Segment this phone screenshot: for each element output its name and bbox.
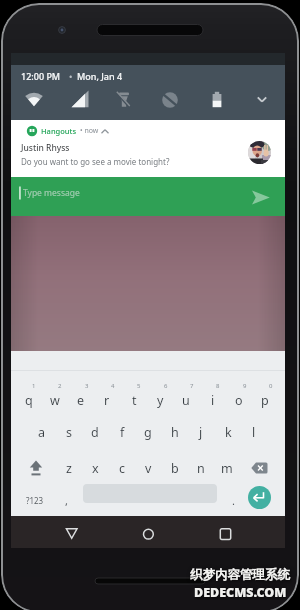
- staticText: Type message: [23, 187, 80, 199]
- staticText: b: [171, 460, 179, 477]
- staticText: g: [144, 424, 152, 441]
- button[interactable]: 6: [153, 377, 179, 395]
- button[interactable]: [136, 520, 160, 544]
- button[interactable]: o: [226, 391, 252, 409]
- button[interactable]: [249, 182, 283, 211]
- staticText: m: [221, 460, 233, 477]
- button[interactable]: i: [200, 391, 226, 409]
- button[interactable]: v: [135, 459, 161, 477]
- staticText: • now: [80, 126, 99, 136]
- staticText: d: [91, 424, 99, 441]
- button[interactable]: .: [220, 491, 246, 509]
- button[interactable]: ?123: [22, 491, 48, 509]
- button[interactable]: k: [215, 423, 241, 441]
- staticText: r: [104, 392, 110, 409]
- button[interactable]: c: [109, 459, 135, 477]
- staticText: Do you want to go see a movie tonight?: [21, 156, 170, 167]
- staticText: f: [120, 424, 125, 441]
- staticText: Hangouts: [41, 126, 77, 136]
- button[interactable]: 4: [100, 377, 126, 395]
- staticText: •: [69, 70, 73, 82]
- staticText: v: [145, 460, 152, 477]
- button[interactable]: z: [56, 459, 82, 477]
- button[interactable]: f: [109, 423, 135, 441]
- button[interactable]: n: [188, 459, 214, 477]
- staticText: 9: [243, 382, 247, 390]
- button[interactable]: 3: [74, 377, 100, 395]
- button[interactable]: Hangouts: [11, 120, 285, 177]
- button[interactable]: s: [56, 423, 82, 441]
- staticText: 6: [164, 382, 168, 390]
- button[interactable]: b: [162, 459, 188, 477]
- staticText: 2: [58, 382, 62, 390]
- staticText: ?123: [26, 495, 44, 506]
- staticText: n: [197, 460, 205, 477]
- button[interactable]: t: [121, 391, 147, 409]
- button[interactable]: e: [68, 391, 94, 409]
- staticText: 8: [216, 382, 220, 390]
- button[interactable]: [249, 93, 281, 117]
- staticText: 5: [137, 382, 141, 390]
- button[interactable]: 9: [232, 377, 258, 395]
- staticText: l: [252, 424, 256, 441]
- staticText: 12:00 PM: [21, 70, 61, 82]
- button[interactable]: Type message: [11, 177, 285, 216]
- button[interactable]: l: [241, 423, 267, 441]
- staticText: j: [199, 424, 203, 441]
- staticText: q: [25, 392, 33, 409]
- button[interactable]: y: [147, 391, 173, 409]
- staticText: Justin Rhyss: [21, 142, 70, 154]
- staticText: k: [225, 424, 232, 441]
- button[interactable]: q: [16, 391, 42, 409]
- button[interactable]: 5: [126, 377, 152, 395]
- button[interactable]: [248, 457, 272, 479]
- button[interactable]: 8: [205, 377, 231, 395]
- button[interactable]: p: [252, 391, 278, 409]
- staticText: u: [182, 392, 190, 409]
- staticText: Mon, Jan 4: [77, 70, 123, 82]
- staticText: c: [119, 460, 126, 477]
- button[interactable]: u: [173, 391, 199, 409]
- button[interactable]: g: [135, 423, 161, 441]
- button[interactable]: x: [82, 459, 108, 477]
- staticText: x: [92, 460, 99, 477]
- button[interactable]: w: [42, 391, 68, 409]
- button[interactable]: [214, 520, 238, 544]
- button[interactable]: h: [162, 423, 188, 441]
- button[interactable]: 7: [179, 377, 205, 395]
- staticText: w: [50, 392, 60, 409]
- button[interactable]: [60, 520, 84, 544]
- staticText: .: [232, 493, 235, 508]
- button[interactable]: [248, 486, 271, 509]
- button[interactable]: j: [188, 423, 214, 441]
- staticText: a: [38, 424, 46, 441]
- staticText: s: [66, 424, 72, 441]
- staticText: e: [77, 392, 85, 409]
- button[interactable]: 0: [258, 377, 284, 395]
- staticText: ,: [65, 493, 68, 508]
- button[interactable]: [24, 457, 48, 479]
- staticText: p: [261, 392, 269, 409]
- button[interactable]: r: [94, 391, 120, 409]
- staticText: h: [171, 424, 179, 441]
- staticText: 7: [190, 382, 194, 390]
- staticText: 0: [269, 382, 273, 390]
- button[interactable]: m: [214, 459, 240, 477]
- button[interactable]: ,: [53, 491, 79, 509]
- staticText: 1: [32, 382, 36, 390]
- staticText: z: [66, 460, 72, 477]
- staticText: i: [211, 392, 215, 409]
- staticText: t: [132, 392, 137, 409]
- staticText: 3: [85, 382, 89, 390]
- staticText: 4: [111, 382, 115, 390]
- staticText: o: [235, 392, 243, 409]
- button[interactable]: a: [29, 423, 55, 441]
- staticText: y: [157, 392, 164, 409]
- button[interactable]: 1: [21, 377, 47, 395]
- button[interactable]: 2: [47, 377, 73, 395]
- staticText: 织梦内容管理系统: [190, 567, 290, 583]
- button[interactable]: d: [82, 423, 108, 441]
- staticText: DEDECMS.COM: [194, 584, 287, 600]
